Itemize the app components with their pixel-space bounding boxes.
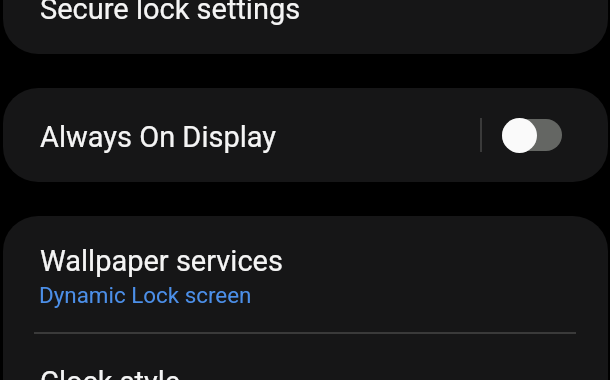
button[interactable]: Always On Display	[3, 88, 608, 182]
button[interactable]: Always On Display switch	[498, 116, 570, 154]
button[interactable]: Secure lock settings	[3, 0, 608, 54]
staticText: Always On Display	[40, 120, 277, 154]
staticText: Clock style	[40, 365, 181, 380]
staticText: Wallpaper services	[40, 244, 283, 278]
staticText: Secure lock settings	[40, 0, 301, 26]
button[interactable]: Wallpaper services	[3, 216, 608, 332]
button[interactable]: Clock style	[3, 334, 608, 380]
staticText: Dynamic Lock screen	[39, 282, 252, 308]
